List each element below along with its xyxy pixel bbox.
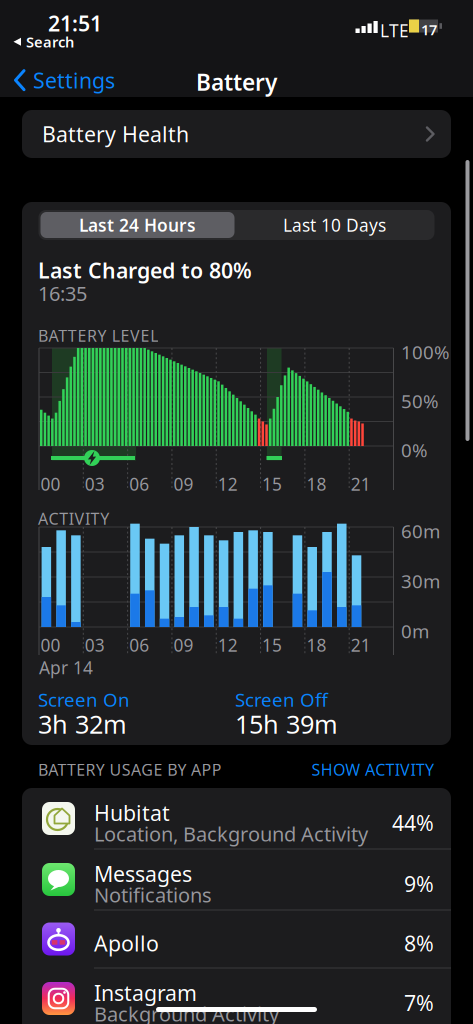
staticText: 15h 39m <box>235 707 338 741</box>
staticText: 0m <box>401 618 429 643</box>
button[interactable]: Back to Search <box>13 32 74 51</box>
button[interactable]: Last 24 Hours <box>40 212 234 238</box>
staticText: Last Charged to 80% <box>38 256 252 284</box>
staticText: Battery Health <box>42 120 189 148</box>
staticText: 00 <box>40 633 60 656</box>
staticText: 3h 32m <box>38 707 127 741</box>
staticText: Messages <box>94 859 192 888</box>
staticText: Apr 14 <box>39 656 93 679</box>
staticText: Screen Off <box>235 687 328 712</box>
staticText: 0% <box>401 437 428 462</box>
staticText: 03 <box>85 472 105 495</box>
staticText: 00 <box>40 472 60 495</box>
button[interactable]: Instagram <box>22 968 451 1024</box>
staticText: 17 <box>421 20 437 39</box>
staticText: 12 <box>218 472 238 495</box>
staticText: Search <box>26 32 74 51</box>
staticText: 03 <box>85 633 105 656</box>
staticText: 06 <box>129 472 149 495</box>
staticText: 8% <box>404 929 434 957</box>
staticText: 7% <box>404 988 434 1017</box>
staticText: Hubitat <box>94 798 170 827</box>
staticText: 100% <box>401 339 450 364</box>
staticText: BATTERY LEVEL <box>38 325 158 346</box>
staticText: Background Activity <box>94 1000 279 1024</box>
button[interactable]: SHOW ACTIVITY <box>311 759 434 780</box>
staticText: Screen On <box>38 687 130 712</box>
staticText: 06 <box>129 633 149 656</box>
button[interactable]: Messages <box>22 849 451 910</box>
staticText: 18 <box>306 472 326 495</box>
staticText: Settings <box>33 66 115 94</box>
button[interactable]: Apollo <box>22 910 451 968</box>
staticText: Apollo <box>94 929 159 957</box>
staticText: SHOW ACTIVITY <box>311 759 434 780</box>
staticText: Battery <box>196 67 277 97</box>
staticText: 30m <box>401 568 440 593</box>
staticText: 18 <box>306 633 326 656</box>
staticText: ACTIVITY <box>38 508 109 529</box>
staticText: 15 <box>262 472 282 495</box>
staticText: 21 <box>351 633 371 656</box>
button[interactable]: Last 10 Days <box>236 212 432 238</box>
staticText: 21 <box>351 472 371 495</box>
staticText: 09 <box>173 472 193 495</box>
staticText: Last 24 Hours <box>79 213 196 236</box>
staticText: 21:51 <box>48 9 102 37</box>
staticText: 16:35 <box>38 280 87 307</box>
staticText: 15 <box>262 633 282 656</box>
staticText: 09 <box>173 633 193 656</box>
staticText: Notifications <box>94 881 212 908</box>
staticText: Instagram <box>94 978 197 1007</box>
button[interactable]: Hubitat <box>22 788 451 849</box>
staticText: 60m <box>401 518 440 543</box>
staticText: Last 10 Days <box>283 213 386 236</box>
staticText: LTE <box>380 19 409 42</box>
button[interactable]: Back to Settings <box>14 66 115 94</box>
button[interactable]: Battery Health <box>22 110 451 158</box>
staticText: 9% <box>404 869 434 898</box>
staticText: 12 <box>218 633 238 656</box>
staticText: Location, Background Activity <box>94 820 368 847</box>
staticText: 50% <box>401 388 439 413</box>
staticText: 44% <box>392 808 434 837</box>
staticText: BATTERY USAGE BY APP <box>38 759 222 780</box>
